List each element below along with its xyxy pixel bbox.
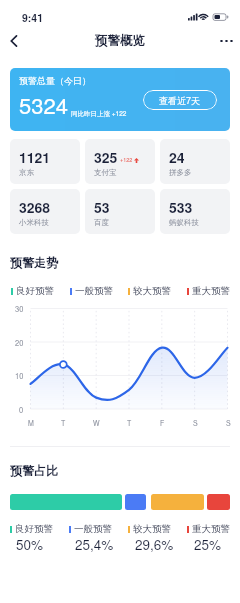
- staticText: 预警走势: [10, 255, 58, 270]
- staticText: 53: [94, 197, 110, 217]
- staticText: +122: [120, 156, 133, 164]
- button[interactable]: 533: [160, 189, 230, 234]
- staticText: S: [226, 418, 231, 428]
- button[interactable]: 53: [85, 189, 155, 234]
- button[interactable]: [151, 494, 204, 510]
- staticText: 拼多多: [169, 168, 192, 177]
- staticText: 50%: [16, 535, 44, 554]
- staticText: 良好预警: [15, 523, 53, 535]
- staticText: 325: [94, 147, 118, 167]
- staticText: 预警总量（今日）: [19, 75, 91, 86]
- staticText: S: [193, 418, 198, 428]
- staticText: T: [61, 418, 66, 428]
- staticText: 10: [15, 370, 24, 381]
- staticText: 同比昨日上涨 +122: [71, 109, 127, 118]
- staticText: 5324: [19, 89, 68, 121]
- staticText: 重大预警: [192, 523, 230, 535]
- button[interactable]: Back: [0, 26, 28, 56]
- staticText: 支付宝: [94, 168, 117, 177]
- staticText: 20: [15, 337, 24, 348]
- staticText: 预警占比: [10, 463, 58, 478]
- button[interactable]: 1121: [10, 139, 80, 184]
- staticText: 重大预警: [192, 285, 230, 297]
- staticText: 良好预警: [16, 285, 54, 297]
- staticText: 百度: [94, 218, 109, 227]
- staticText: 533: [169, 197, 193, 217]
- staticText: 京东: [19, 168, 34, 177]
- staticText: 29,6%: [135, 535, 174, 554]
- staticText: 30: [15, 303, 24, 314]
- staticText: F: [160, 418, 165, 428]
- staticText: 25,4%: [75, 535, 114, 554]
- staticText: 小米科技: [19, 218, 49, 227]
- button[interactable]: [207, 494, 230, 510]
- staticText: M: [28, 418, 34, 428]
- button[interactable]: 预警总量（今日）: [10, 68, 230, 131]
- button[interactable]: More options: [214, 26, 240, 56]
- staticText: 预警概览: [95, 33, 145, 49]
- staticText: 一般预警: [74, 523, 112, 535]
- staticText: W: [93, 418, 100, 428]
- button[interactable]: 查看近7天: [143, 90, 217, 110]
- staticText: 25%: [194, 535, 222, 554]
- staticText: 较大预警: [133, 285, 171, 297]
- staticText: T: [127, 418, 132, 428]
- staticText: 24: [169, 147, 185, 167]
- staticText: 3268: [19, 197, 51, 217]
- staticText: 0: [19, 404, 24, 415]
- button[interactable]: [125, 494, 146, 510]
- staticText: 蚂蚁科技: [169, 218, 199, 227]
- staticText: 一般预警: [75, 285, 113, 297]
- staticText: 查看近7天: [159, 94, 201, 107]
- button[interactable]: 325: [85, 139, 155, 184]
- button[interactable]: 24: [160, 139, 230, 184]
- staticText: 较大预警: [133, 523, 171, 535]
- button[interactable]: [10, 494, 122, 510]
- staticText: 1121: [19, 147, 51, 167]
- staticText: 9:41: [22, 10, 44, 25]
- button[interactable]: 3268: [10, 189, 80, 234]
